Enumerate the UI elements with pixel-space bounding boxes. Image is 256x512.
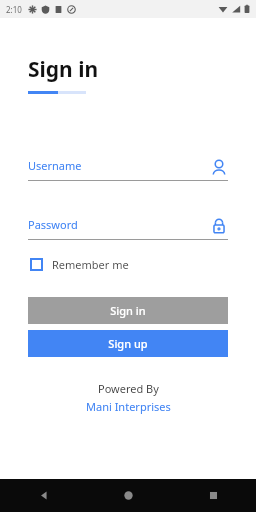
staticText: Username: [28, 158, 210, 173]
staticText: Sign up: [108, 336, 148, 351]
staticText: Sign in: [110, 303, 146, 318]
other: Username: [210, 158, 228, 176]
button[interactable]: Sign in: [28, 297, 228, 324]
button[interactable]: Recent apps: [171, 479, 256, 512]
staticText: Remember me: [52, 257, 129, 272]
staticText: 2:10: [6, 4, 22, 15]
button[interactable]: Sign up: [28, 330, 228, 357]
other: Password: [210, 217, 228, 235]
button[interactable]: Back: [0, 479, 86, 512]
button[interactable]: Remember me: [28, 254, 131, 275]
staticText: Sign in: [28, 55, 99, 84]
button[interactable]: Home: [86, 479, 171, 512]
staticText: Password: [28, 217, 210, 232]
staticText: Powered By: [98, 381, 159, 396]
button[interactable]: Mani Interprises: [86, 399, 171, 414]
